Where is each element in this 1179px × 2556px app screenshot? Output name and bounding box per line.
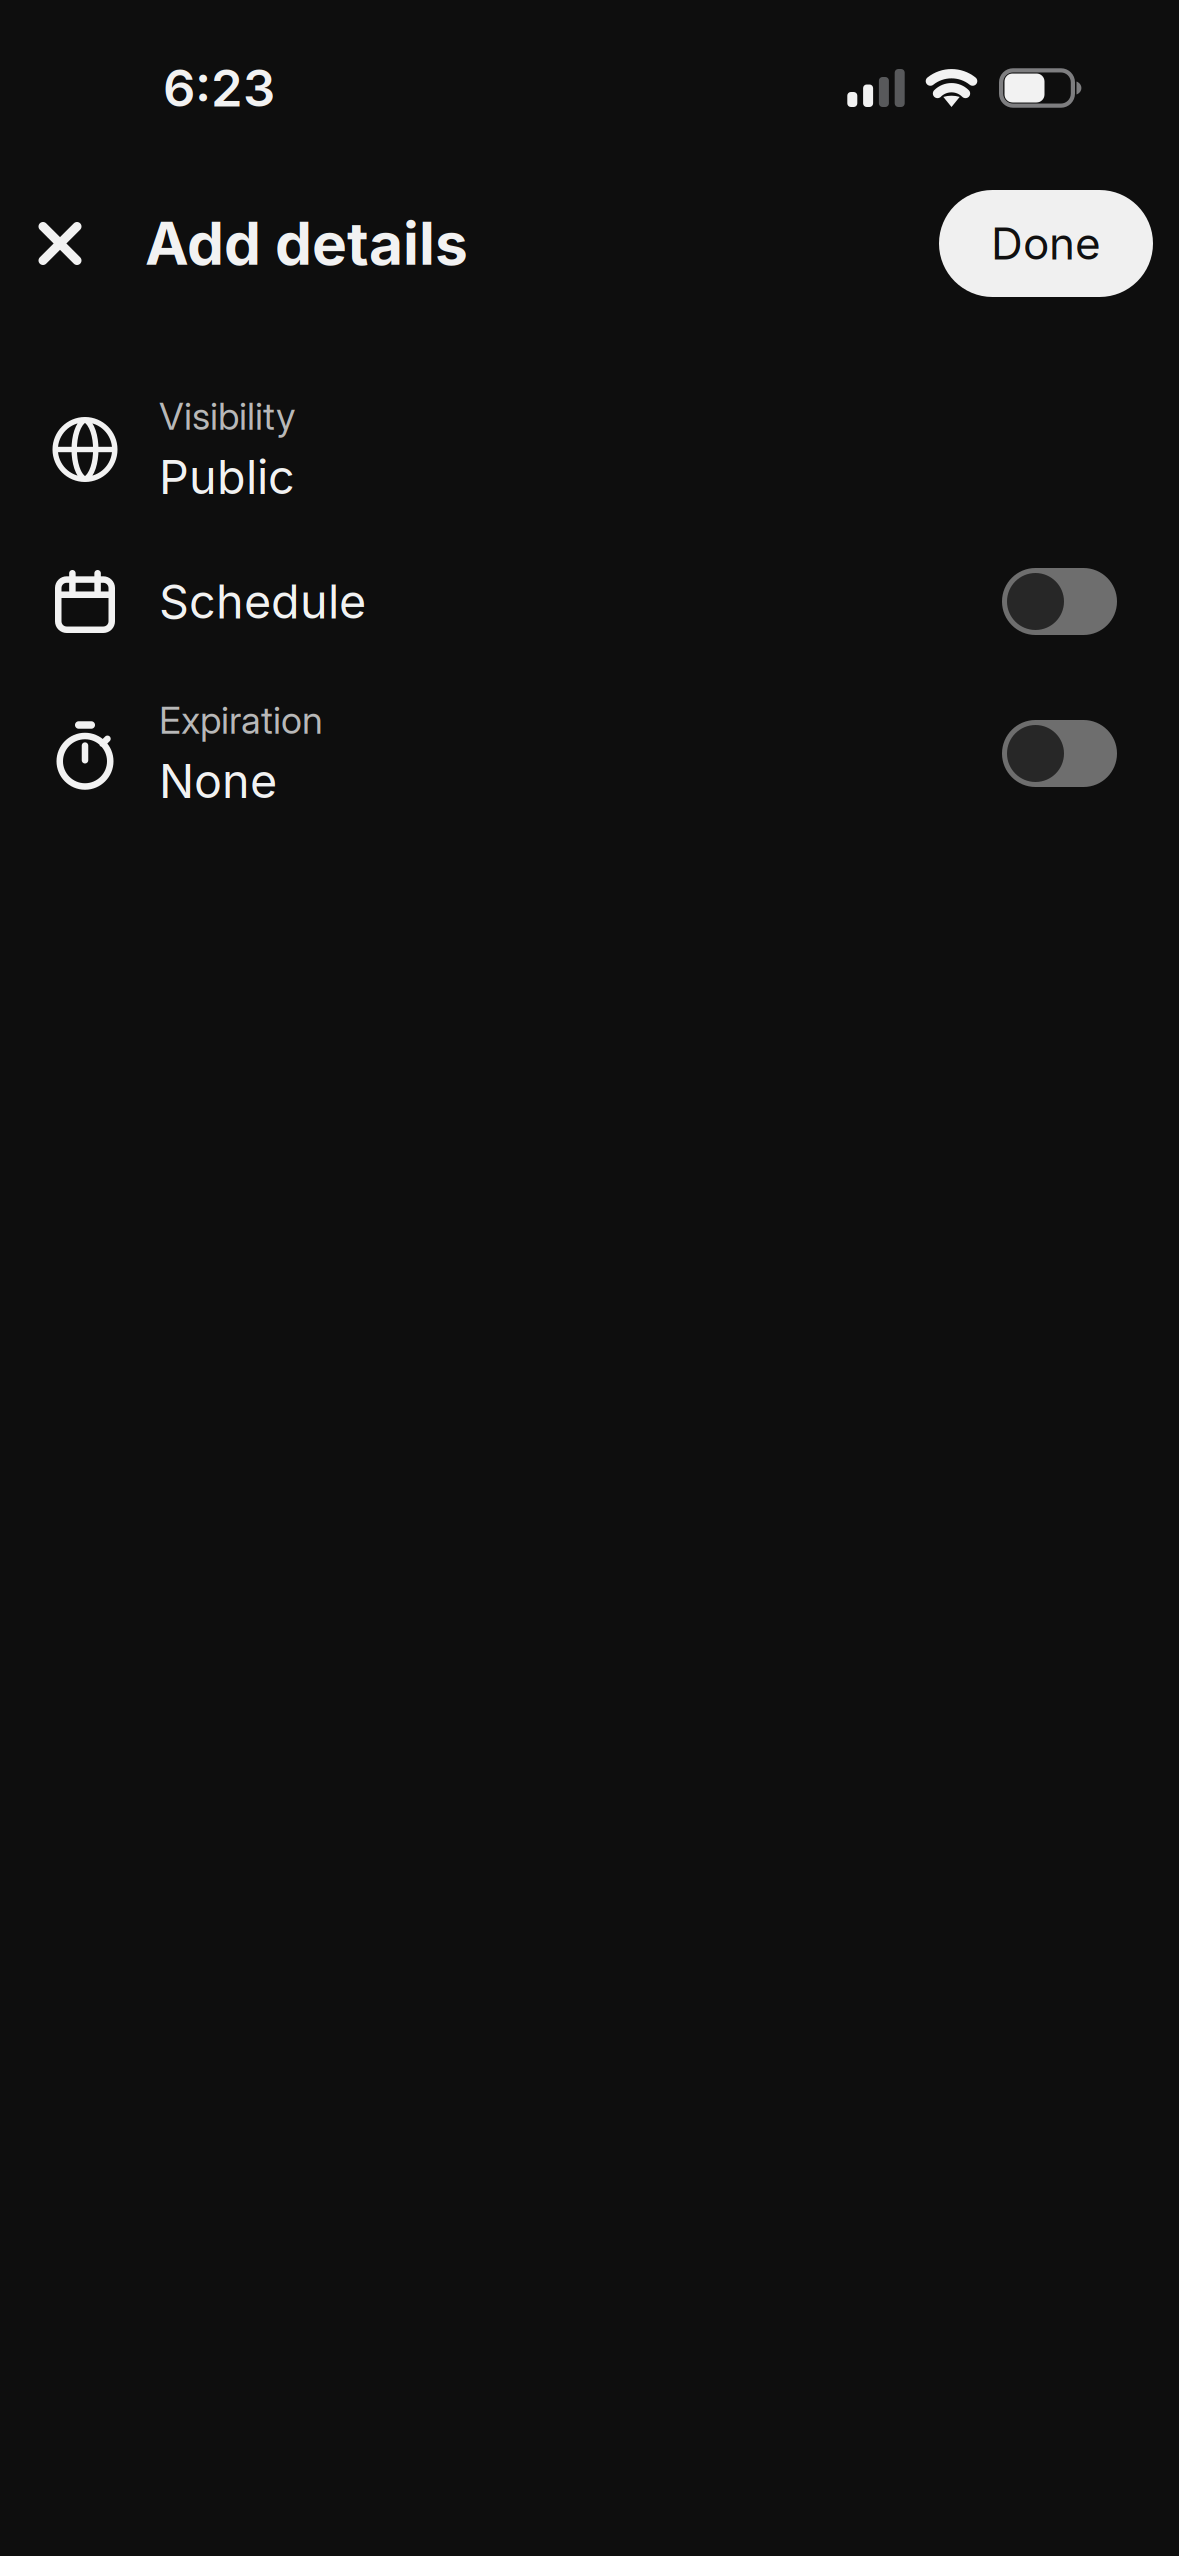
- staticText: Done: [991, 217, 1101, 270]
- button[interactable]: Done: [939, 190, 1153, 297]
- staticText: Add details: [145, 208, 468, 279]
- button[interactable]: Close: [4, 187, 116, 299]
- button[interactable]: Schedule toggle: [1002, 568, 1117, 635]
- staticText: 6:23: [163, 57, 275, 119]
- button[interactable]: Expiration toggle: [1002, 720, 1117, 787]
- staticText: None: [159, 753, 277, 809]
- button[interactable]: Schedule: [0, 525, 1002, 677]
- staticText: Schedule: [159, 573, 366, 630]
- button[interactable]: Expiration, None: [0, 677, 1002, 829]
- button[interactable]: Visibility, Public: [0, 373, 1179, 525]
- staticText: Public: [159, 449, 295, 505]
- staticText: Expiration: [159, 698, 323, 743]
- staticText: Visibility: [159, 394, 296, 439]
